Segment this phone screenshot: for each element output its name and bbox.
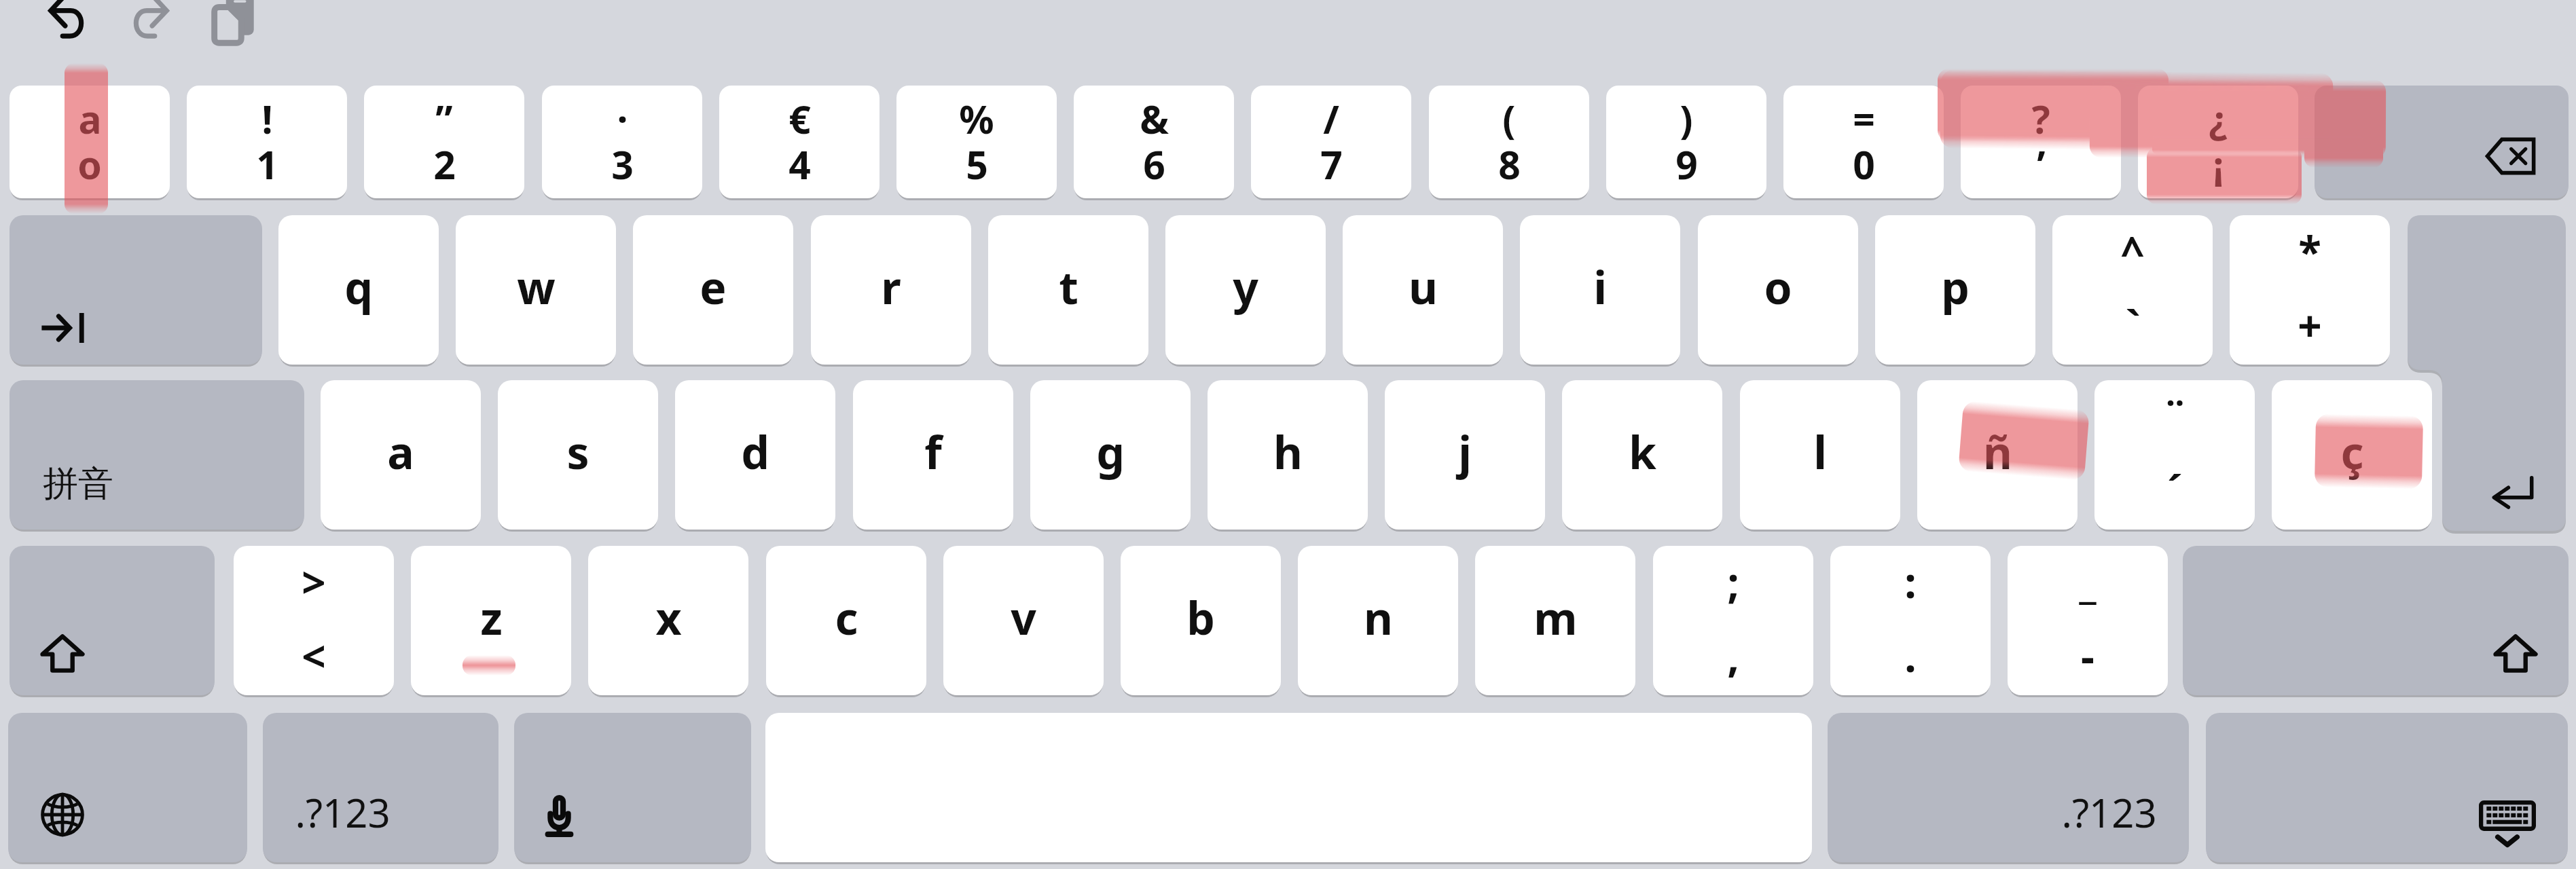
- staticText: €: [788, 92, 811, 145]
- button[interactable]: Shift: [10, 546, 215, 695]
- staticText: 4: [788, 138, 811, 191]
- button[interactable]: s: [498, 380, 658, 530]
- button[interactable]: ñ: [1917, 380, 2078, 530]
- button[interactable]: ?: [1961, 86, 2121, 198]
- staticText: 5: [966, 138, 988, 191]
- button[interactable]: ;: [1653, 546, 1813, 695]
- button[interactable]: ·: [542, 86, 702, 198]
- button[interactable]: 拼音: [10, 380, 304, 530]
- button[interactable]: (: [1429, 86, 1589, 198]
- staticText: u: [1409, 256, 1438, 317]
- button[interactable]: _: [2008, 546, 2168, 695]
- button[interactable]: a: [10, 86, 170, 198]
- button[interactable]: g: [1030, 380, 1191, 530]
- button[interactable]: Tab: [10, 215, 262, 365]
- button[interactable]: o: [1698, 215, 1858, 365]
- staticText: j: [1458, 421, 1472, 482]
- staticText: ): [1680, 92, 1693, 145]
- staticText: d: [741, 421, 769, 482]
- staticText: 6: [1143, 138, 1165, 191]
- button[interactable]: &: [1074, 86, 1234, 198]
- button[interactable]: u: [1343, 215, 1503, 365]
- staticText: :: [1904, 553, 1917, 610]
- staticText: a: [78, 92, 102, 145]
- button[interactable]: ç: [2272, 380, 2432, 530]
- staticText: 7: [1320, 138, 1343, 191]
- button[interactable]: :: [1830, 546, 1991, 695]
- staticText: <: [302, 627, 326, 684]
- button[interactable]: z: [411, 546, 571, 695]
- staticText: =: [1853, 92, 1875, 145]
- button[interactable]: c: [766, 546, 926, 695]
- staticText: ;: [1727, 553, 1739, 610]
- button[interactable]: Voice input: [514, 713, 751, 862]
- button[interactable]: b: [1121, 546, 1281, 695]
- button[interactable]: a: [321, 380, 481, 530]
- button[interactable]: w: [456, 215, 616, 365]
- button[interactable]: q: [278, 215, 439, 365]
- button[interactable]: ^: [2052, 215, 2213, 365]
- button[interactable]: l: [1740, 380, 1900, 530]
- button[interactable]: !: [187, 86, 347, 198]
- button[interactable]: Enter: [2408, 215, 2566, 531]
- button[interactable]: r: [811, 215, 971, 365]
- button[interactable]: Hide keyboard: [2206, 713, 2568, 862]
- staticText: g: [1096, 421, 1125, 482]
- staticText: t: [1059, 256, 1078, 317]
- button[interactable]: Shift: [2183, 546, 2569, 695]
- staticText: ç: [2340, 421, 2364, 482]
- button[interactable]: f: [853, 380, 1013, 530]
- staticText: 2: [433, 138, 456, 191]
- button[interactable]: x: [588, 546, 748, 695]
- staticText: ?: [2031, 92, 2050, 145]
- button[interactable]: y: [1165, 215, 1326, 365]
- button[interactable]: n: [1298, 546, 1458, 695]
- button[interactable]: ¿: [2138, 86, 2298, 198]
- button[interactable]: Backspace: [2315, 86, 2569, 198]
- staticText: _: [2079, 553, 2097, 610]
- staticText: ñ: [1983, 421, 2012, 482]
- button[interactable]: ”: [364, 86, 524, 198]
- staticText: .?123: [2061, 785, 2157, 839]
- staticText: ,: [1727, 627, 1739, 684]
- staticText: s: [566, 421, 589, 482]
- button[interactable]: .?123: [263, 713, 498, 862]
- staticText: ´: [2167, 462, 2183, 519]
- button[interactable]: m: [1475, 546, 1635, 695]
- button[interactable]: h: [1208, 380, 1368, 530]
- button[interactable]: Copy: [213, 0, 257, 46]
- staticText: %: [959, 92, 994, 145]
- button[interactable]: d: [675, 380, 835, 530]
- button[interactable]: =: [1783, 86, 1944, 198]
- button[interactable]: ¨: [2094, 380, 2255, 530]
- staticText: v: [1011, 587, 1036, 648]
- button[interactable]: p: [1875, 215, 2035, 365]
- button[interactable]: Redo: [133, 0, 169, 40]
- button[interactable]: .?123: [1828, 713, 2189, 862]
- button[interactable]: ): [1606, 86, 1766, 198]
- staticText: e: [700, 256, 727, 317]
- button[interactable]: Undo: [48, 0, 84, 40]
- staticText: q: [344, 256, 373, 317]
- staticText: ”: [435, 92, 453, 145]
- staticText: ¡: [2213, 138, 2224, 191]
- button[interactable]: v: [943, 546, 1104, 695]
- button[interactable]: i: [1520, 215, 1680, 365]
- button[interactable]: €: [719, 86, 879, 198]
- button[interactable]: *: [2230, 215, 2390, 365]
- button[interactable]: >: [234, 546, 394, 695]
- staticText: ¨: [2162, 388, 2188, 445]
- button[interactable]: j: [1385, 380, 1545, 530]
- button[interactable]: /: [1251, 86, 1411, 198]
- staticText: o: [77, 138, 102, 191]
- button[interactable]: t: [988, 215, 1148, 365]
- staticText: h: [1273, 421, 1303, 482]
- button[interactable]: Change language: [8, 713, 247, 862]
- button[interactable]: k: [1562, 380, 1722, 530]
- staticText: r: [881, 256, 901, 317]
- staticText: !: [261, 92, 273, 145]
- button[interactable]: %: [896, 86, 1057, 198]
- staticText: b: [1186, 587, 1215, 648]
- button[interactable]: e: [633, 215, 793, 365]
